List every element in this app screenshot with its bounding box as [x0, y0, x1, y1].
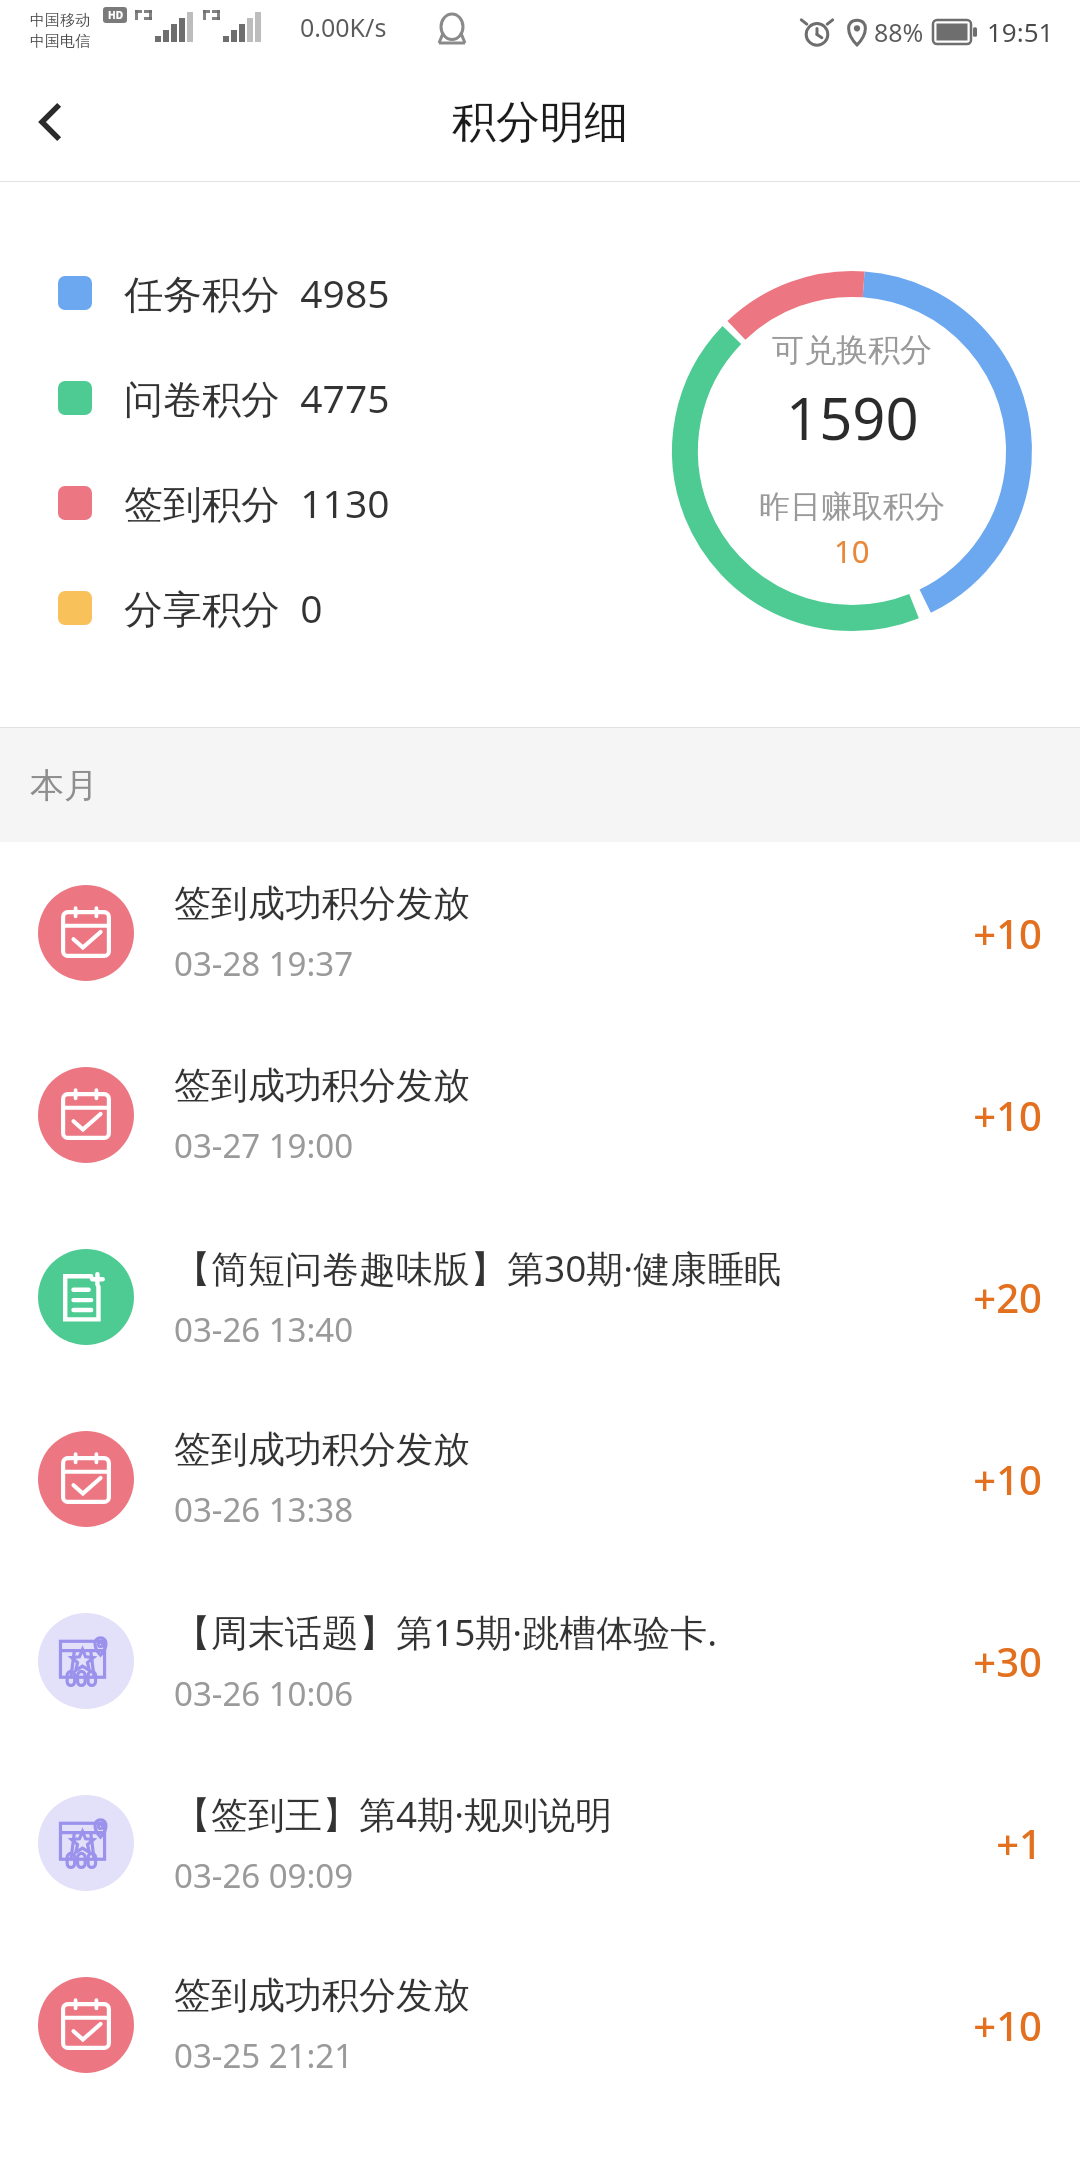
staticText: 03-26 10:06 — [174, 1671, 354, 1716]
staticText: 【简短问卷趣味版】第30期·健康睡眠 — [174, 1242, 782, 1293]
staticText: +30 — [973, 1634, 1042, 1688]
button[interactable]: 签到成功积分发放 — [0, 842, 1080, 1024]
staticText: 可兑换积分 — [772, 330, 932, 370]
staticText: HD — [108, 8, 123, 22]
staticText: 03-26 13:40 — [174, 1307, 354, 1352]
staticText: 签到积分 1130 — [124, 476, 390, 529]
staticText: 中国移动 — [30, 11, 90, 30]
staticText: 【周末话题】第15期·跳槽体验卡. — [174, 1606, 718, 1657]
staticText: 19:51 — [987, 14, 1054, 49]
staticText: 03-26 13:38 — [174, 1487, 354, 1532]
staticText: 03-25 21:21 — [174, 2033, 354, 2078]
staticText: 03-26 09:09 — [174, 1853, 354, 1898]
staticText: 中国电信 — [30, 32, 90, 51]
staticText: 本月 — [30, 764, 98, 807]
button[interactable]: 【周末话题】第15期·跳槽体验卡. — [0, 1570, 1080, 1752]
staticText: 88% — [874, 15, 924, 49]
button[interactable]: 签到成功积分发放 — [0, 1934, 1080, 2116]
staticText: +1 — [996, 1816, 1042, 1870]
staticText: +10 — [973, 1452, 1042, 1506]
staticText: 1590 — [786, 378, 919, 457]
staticText: +10 — [973, 1998, 1042, 2052]
staticText: 昨日赚取积分 — [759, 487, 945, 526]
staticText: 03-27 19:00 — [174, 1123, 354, 1168]
staticText: 任务积分 4985 — [124, 266, 390, 319]
staticText: +10 — [973, 906, 1042, 960]
staticText: 10 — [834, 530, 870, 572]
staticText: 0.00K/s — [300, 10, 387, 44]
staticText: 问卷积分 4775 — [124, 371, 390, 424]
staticText: 分享积分 0 — [124, 581, 323, 634]
staticText: +20 — [973, 1270, 1042, 1324]
button[interactable]: 【简短问卷趣味版】第30期·健康睡眠 — [0, 1206, 1080, 1388]
button[interactable]: 签到成功积分发放 — [0, 1024, 1080, 1206]
staticText: 签到成功积分发放 — [174, 880, 470, 927]
staticText: 【签到王】第4期·规则说明 — [174, 1788, 613, 1839]
button[interactable]: Back — [0, 72, 100, 172]
button[interactable]: 【签到王】第4期·规则说明 — [0, 1752, 1080, 1934]
staticText: 积分明细 — [452, 95, 628, 150]
button[interactable]: 签到成功积分发放 — [0, 1388, 1080, 1570]
staticText: 03-28 19:37 — [174, 941, 354, 986]
staticText: +10 — [973, 1088, 1042, 1142]
staticText: 签到成功积分发放 — [174, 1062, 470, 1109]
staticText: 签到成功积分发放 — [174, 1426, 470, 1473]
staticText: 签到成功积分发放 — [174, 1972, 470, 2019]
